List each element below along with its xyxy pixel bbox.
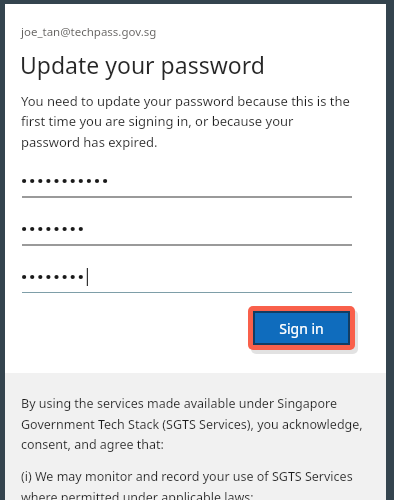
staticText: You need to update your password because… (21, 92, 354, 151)
staticText: (i) We may monitor and record your use o… (21, 468, 366, 500)
button[interactable] (0, 172, 394, 198)
button[interactable]: Sign in (253, 311, 350, 345)
staticText: Update your password (20, 49, 265, 80)
staticText: Sign in (279, 319, 324, 338)
staticText: By using the services made available und… (21, 395, 366, 452)
button[interactable] (0, 220, 394, 246)
staticText: joe_tan@techpass.gov.sg (21, 24, 157, 40)
button[interactable] (0, 268, 394, 293)
